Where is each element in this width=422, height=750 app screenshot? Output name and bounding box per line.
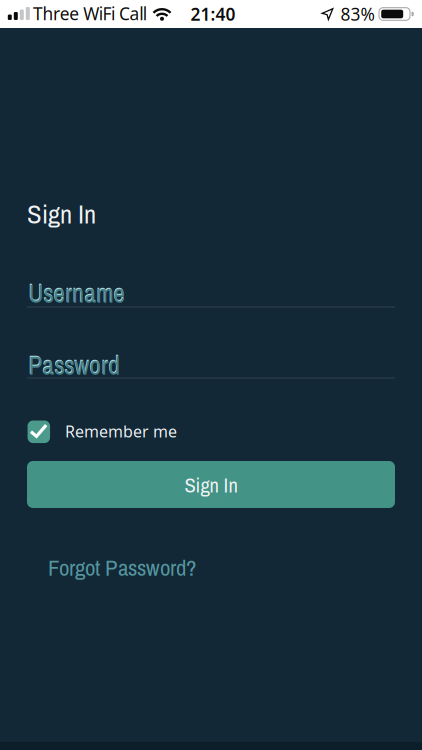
staticText: Three WiFi Call: [33, 2, 147, 25]
staticText: Password: [28, 347, 120, 381]
staticText: 21:40: [190, 2, 235, 25]
staticText: Sign In: [184, 471, 237, 499]
staticText: Forgot Password?: [48, 552, 196, 583]
staticText: Remember me: [65, 421, 177, 442]
staticText: Password: [28, 348, 120, 383]
staticText: 83%: [340, 2, 374, 25]
staticText: Sign In: [27, 196, 96, 232]
staticText: Username: [28, 275, 125, 309]
staticText: Username: [28, 276, 125, 311]
